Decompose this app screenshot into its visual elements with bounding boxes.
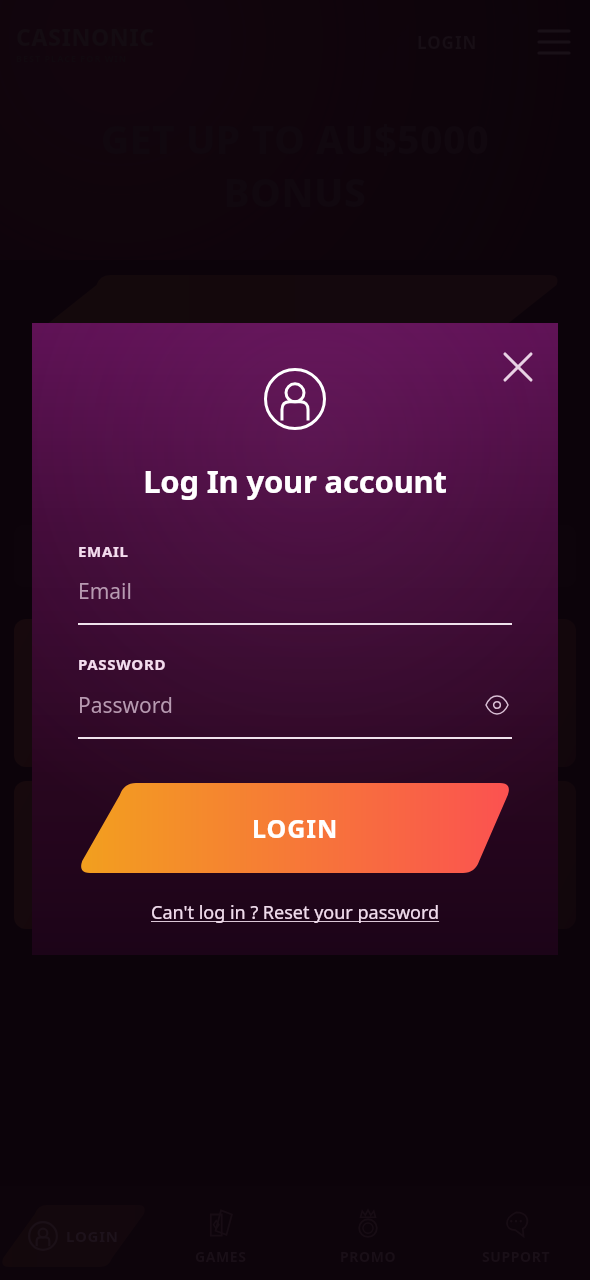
staticText: GAMES [195,1247,247,1266]
button[interactable]: Show password [482,690,512,720]
button[interactable]: Can't log in ? Reset your password [78,900,512,925]
button[interactable] [14,781,288,929]
button[interactable] [302,619,576,767]
button[interactable] [14,619,288,767]
button[interactable]: LOGIN [0,1205,147,1267]
staticText: Log In your account [32,460,558,502]
staticText: Can't log in ? Reset your password [151,900,440,925]
button[interactable] [302,781,576,929]
staticText: LOGIN [252,811,339,845]
staticText: PROMO [340,1247,397,1266]
staticText: Email [78,577,512,606]
staticText: LOGIN [417,31,478,54]
staticText: PASSWORD [78,654,167,674]
button[interactable]: Menu [534,22,574,62]
button[interactable]: Close [496,345,540,389]
button[interactable]: LOGIN [78,783,512,873]
staticText: SUPPORT [482,1247,551,1266]
staticText: LOGIN [66,1226,119,1246]
staticText: EMAIL [78,541,129,561]
staticText: Password [78,691,482,720]
